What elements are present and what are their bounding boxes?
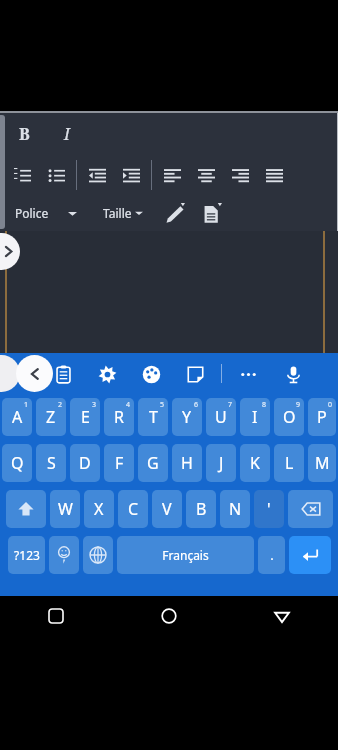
staticText: H — [181, 452, 193, 474]
staticText: V — [162, 498, 172, 520]
staticText: 6 — [194, 400, 199, 410]
staticText: R — [114, 406, 124, 428]
button[interactable]: Justify — [257, 157, 291, 193]
button[interactable]: More options — [235, 361, 261, 387]
button[interactable]: Y — [172, 398, 202, 436]
button[interactable]: Shift — [6, 490, 46, 528]
staticText: M — [315, 452, 330, 474]
button[interactable]: X — [84, 490, 114, 528]
button[interactable]: U — [206, 398, 236, 436]
button[interactable]: Settings — [94, 361, 120, 387]
button[interactable]: Clipboard — [50, 361, 76, 387]
staticText: N — [229, 498, 242, 520]
button[interactable]: A — [2, 398, 32, 436]
button[interactable]: O — [274, 398, 304, 436]
staticText: 0 — [328, 400, 333, 410]
staticText: I — [252, 406, 258, 428]
staticText: . — [270, 546, 274, 564]
button[interactable]: Numbered list — [5, 157, 39, 193]
button[interactable]: M — [308, 444, 336, 482]
staticText: ' — [267, 498, 271, 520]
button[interactable]: Bulleted list — [39, 157, 73, 193]
button[interactable]: Decrease indent — [80, 157, 114, 193]
staticText: S — [47, 452, 56, 474]
button[interactable]: J — [206, 444, 236, 482]
button[interactable]: Collapse toolbar — [16, 355, 53, 392]
button[interactable]: Expand toolbar — [0, 233, 20, 270]
button[interactable]: Text colour — [161, 200, 187, 226]
staticText: 7 — [228, 400, 233, 410]
button[interactable]: G — [138, 444, 168, 482]
button[interactable]: V — [152, 490, 182, 528]
staticText: L — [285, 452, 294, 474]
staticText: E — [81, 406, 90, 428]
staticText: J — [219, 452, 224, 474]
button[interactable]: Page style — [198, 200, 224, 226]
button[interactable]: D — [70, 444, 100, 482]
staticText: Z — [46, 406, 56, 428]
button[interactable]: E — [70, 398, 100, 436]
staticText: C — [128, 498, 139, 520]
staticText: D — [79, 452, 91, 474]
button[interactable]: N — [220, 490, 250, 528]
button[interactable]: Emoji — [49, 536, 79, 574]
button[interactable]: S — [36, 444, 66, 482]
staticText: Taille — [103, 205, 132, 221]
button[interactable]: Align center — [189, 157, 223, 193]
staticText: Police — [15, 205, 49, 221]
button[interactable]: Align right — [223, 157, 257, 193]
staticText: Français — [162, 547, 209, 563]
staticText: Q — [11, 452, 24, 474]
staticText: K — [250, 452, 260, 474]
button[interactable]: Align left — [155, 157, 189, 193]
staticText: 2 — [58, 400, 63, 410]
button[interactable]: B — [7, 117, 41, 151]
button[interactable]: K — [240, 444, 270, 482]
staticText: X — [94, 498, 104, 520]
button[interactable]: F — [104, 444, 134, 482]
staticText: 5 — [160, 400, 165, 410]
staticText: ?123 — [14, 547, 40, 563]
button[interactable]: H — [172, 444, 202, 482]
button[interactable]: Français — [117, 536, 254, 574]
staticText: B — [196, 498, 207, 520]
button[interactable]: Recents — [0, 596, 112, 636]
button[interactable]: C — [118, 490, 148, 528]
staticText: 8 — [262, 400, 267, 410]
button[interactable]: L — [274, 444, 304, 482]
staticText: 9 — [296, 400, 301, 410]
staticText: U — [215, 406, 227, 428]
button[interactable]: Back — [225, 596, 338, 636]
button[interactable]: P — [308, 398, 336, 436]
button[interactable]: Police — [13, 203, 79, 223]
button[interactable]: ' — [254, 490, 284, 528]
staticText: I — [64, 123, 70, 145]
button[interactable]: W — [50, 490, 80, 528]
staticText: T — [149, 406, 158, 428]
staticText: 3 — [92, 400, 97, 410]
button[interactable]: Switch language — [83, 536, 113, 574]
button[interactable]: Stickers — [182, 361, 208, 387]
button[interactable]: Voice input — [280, 361, 306, 387]
staticText: 4 — [126, 400, 131, 410]
button[interactable]: Z — [36, 398, 66, 436]
staticText: G — [147, 452, 159, 474]
button[interactable]: R — [104, 398, 134, 436]
button[interactable]: Themes — [138, 361, 164, 387]
staticText: W — [58, 498, 73, 520]
button[interactable]: Q — [2, 444, 32, 482]
button[interactable]: B — [186, 490, 216, 528]
button[interactable]: I — [50, 117, 84, 151]
button[interactable]: T — [138, 398, 168, 436]
staticText: P — [317, 406, 327, 428]
button[interactable]: . — [258, 536, 285, 574]
button[interactable]: I — [240, 398, 270, 436]
button[interactable]: Increase indent — [114, 157, 148, 193]
button[interactable]: Taille — [101, 203, 145, 223]
button[interactable]: Backspace — [288, 490, 333, 528]
button[interactable]: ?123 — [8, 536, 45, 574]
staticText: 1 — [24, 400, 29, 410]
button[interactable]: Home — [112, 596, 225, 636]
button[interactable]: Enter — [289, 536, 331, 574]
staticText: O — [283, 406, 296, 428]
